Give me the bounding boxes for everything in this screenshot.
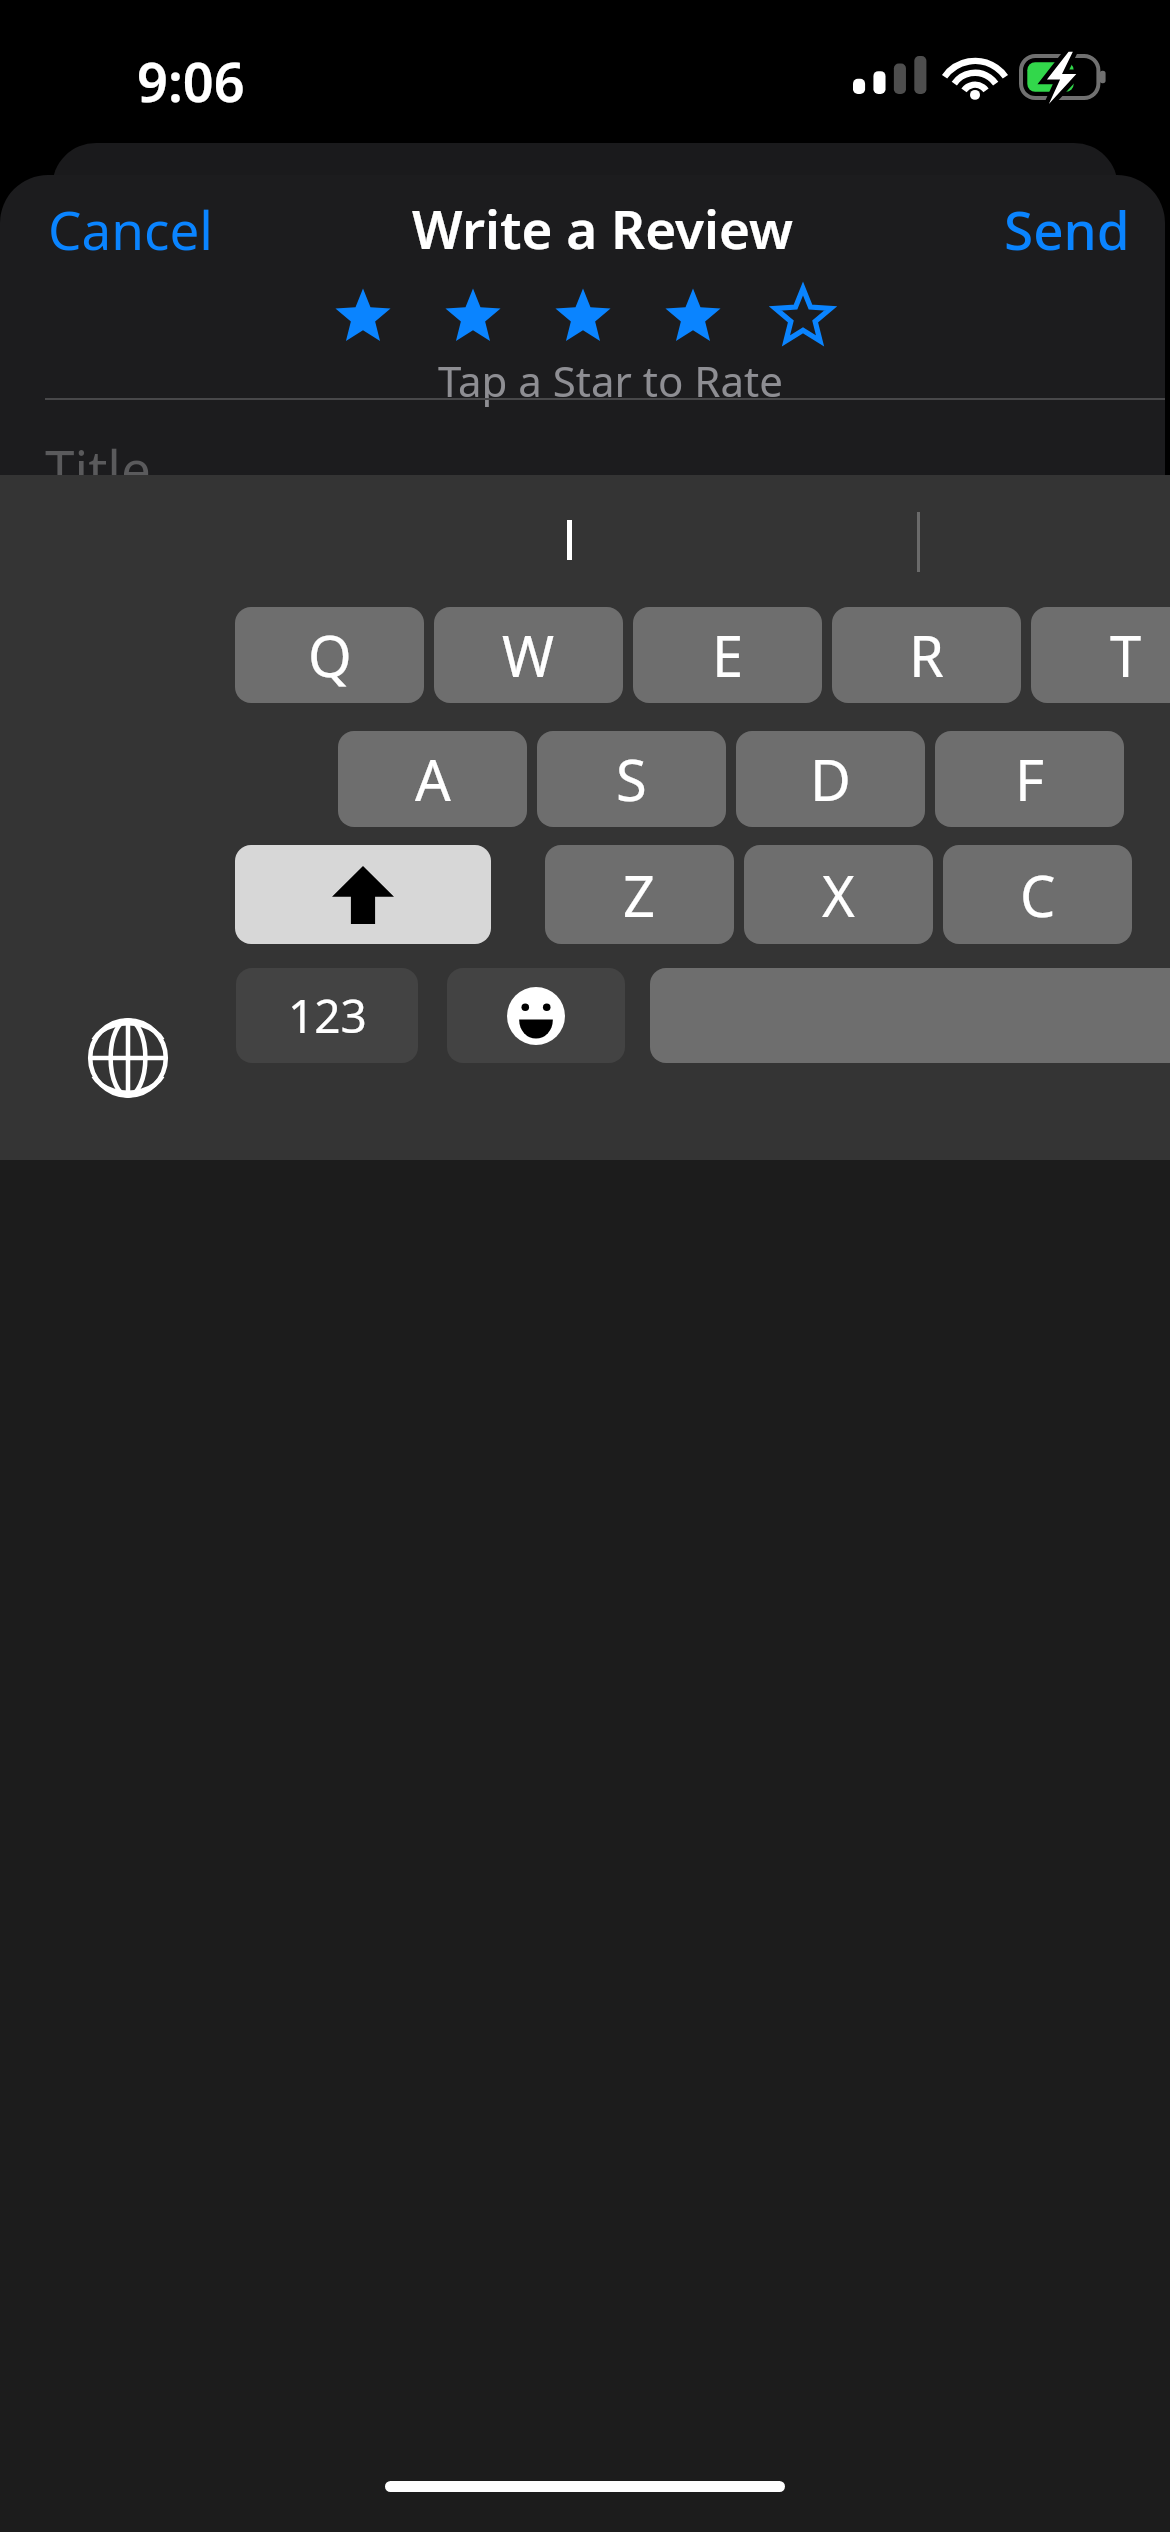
- button[interactable]: Emoji: [447, 968, 625, 1063]
- button[interactable]: S: [537, 731, 726, 827]
- button[interactable]: Rate 1 star: [311, 272, 415, 360]
- button[interactable]: 123: [236, 968, 418, 1063]
- staticText: T: [1110, 617, 1142, 693]
- staticText: C: [1020, 857, 1056, 933]
- staticText: Send: [1004, 193, 1130, 265]
- staticText: A: [415, 741, 451, 817]
- staticText: F: [1015, 741, 1045, 817]
- staticText: Q: [308, 617, 352, 693]
- button[interactable]: D: [736, 731, 925, 827]
- button[interactable]: W: [434, 607, 623, 703]
- staticText: R: [909, 617, 944, 693]
- button[interactable]: Rate 3 star: [531, 272, 635, 360]
- button[interactable]: Send: [980, 182, 1130, 276]
- button[interactable]: T: [1031, 607, 1170, 703]
- staticText: 123: [288, 984, 367, 1047]
- staticText: Z: [623, 857, 656, 933]
- button[interactable]: Cancel: [44, 182, 274, 276]
- button[interactable]: Rate 4 star: [641, 272, 745, 360]
- staticText: W: [502, 617, 555, 693]
- button[interactable]: C: [943, 845, 1132, 944]
- button[interactable]: E: [633, 607, 822, 703]
- button[interactable]: Rate 2 star: [421, 272, 525, 360]
- button[interactable]: F: [935, 731, 1124, 827]
- button[interactable]: R: [832, 607, 1021, 703]
- staticText: D: [810, 741, 851, 817]
- button[interactable]: Z: [545, 845, 734, 944]
- button[interactable]: X: [744, 845, 933, 944]
- button[interactable]: Next keyboard: [86, 1016, 170, 1100]
- staticText: 9:06: [137, 44, 245, 118]
- staticText: Write a Review: [412, 192, 794, 264]
- staticText: Tap a Star to Rate: [438, 352, 783, 409]
- staticText: Cancel: [48, 193, 213, 265]
- button[interactable]: Shift: [235, 845, 491, 944]
- staticText: E: [712, 617, 744, 693]
- staticText: S: [616, 741, 647, 817]
- staticText: X: [822, 857, 855, 933]
- button[interactable]: Rate 5 star: [751, 272, 855, 360]
- staticText: Title: [45, 432, 151, 504]
- button[interactable]: A: [338, 731, 527, 827]
- button[interactable]: Q: [235, 607, 424, 703]
